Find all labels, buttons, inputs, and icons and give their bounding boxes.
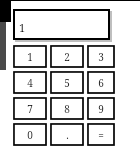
staticText: 3 [98,50,104,64]
button[interactable]: 0 [13,123,47,146]
staticText: 6 [98,76,104,90]
staticText: 0 [27,128,33,142]
staticText: 4 [27,76,33,90]
button[interactable]: 8 [50,97,84,120]
staticText: 8 [64,102,70,116]
staticText: 7 [27,102,33,116]
button[interactable]: = [87,123,115,146]
staticText: 1 [19,20,26,35]
staticText: 2 [64,50,70,64]
button[interactable]: 9 [87,97,115,120]
button[interactable]: 3 [87,45,115,68]
button[interactable]: 5 [50,71,84,94]
button[interactable]: . [50,123,84,146]
button[interactable]: 1 [13,45,47,68]
button[interactable]: 6 [87,71,115,94]
button[interactable]: 4 [13,71,47,94]
other: Keypad [13,45,115,146]
staticText: . [66,128,69,142]
staticText: 9 [98,102,104,116]
staticText: 1 [27,50,33,64]
button[interactable]: 7 [13,97,47,120]
button[interactable]: 2 [50,45,84,68]
button[interactable]: 1 [13,9,110,40]
staticText: 5 [64,76,70,90]
staticText: = [98,128,104,142]
